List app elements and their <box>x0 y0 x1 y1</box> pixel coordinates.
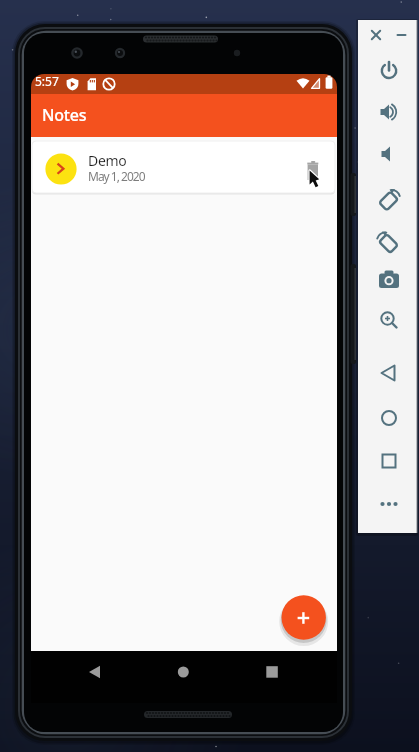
button[interactable] <box>376 309 402 335</box>
button[interactable] <box>376 99 402 125</box>
button[interactable] <box>376 405 402 431</box>
button[interactable] <box>376 491 402 517</box>
button[interactable] <box>376 183 402 209</box>
button[interactable] <box>376 57 402 83</box>
button[interactable] <box>394 28 409 43</box>
button[interactable] <box>32 141 335 193</box>
button[interactable] <box>281 595 326 640</box>
button[interactable] <box>376 448 402 474</box>
staticText: Notes <box>42 104 87 126</box>
button[interactable] <box>376 267 402 293</box>
staticText: 5:57 <box>35 73 59 89</box>
button[interactable] <box>376 360 402 386</box>
staticText: May 1, 2020 <box>88 168 145 184</box>
button[interactable] <box>256 657 286 687</box>
staticText: Demo <box>88 151 127 170</box>
button[interactable] <box>301 155 325 183</box>
button[interactable] <box>168 657 198 687</box>
button[interactable] <box>369 28 384 43</box>
button[interactable] <box>80 657 110 687</box>
button[interactable] <box>376 141 402 167</box>
button[interactable] <box>376 225 402 251</box>
